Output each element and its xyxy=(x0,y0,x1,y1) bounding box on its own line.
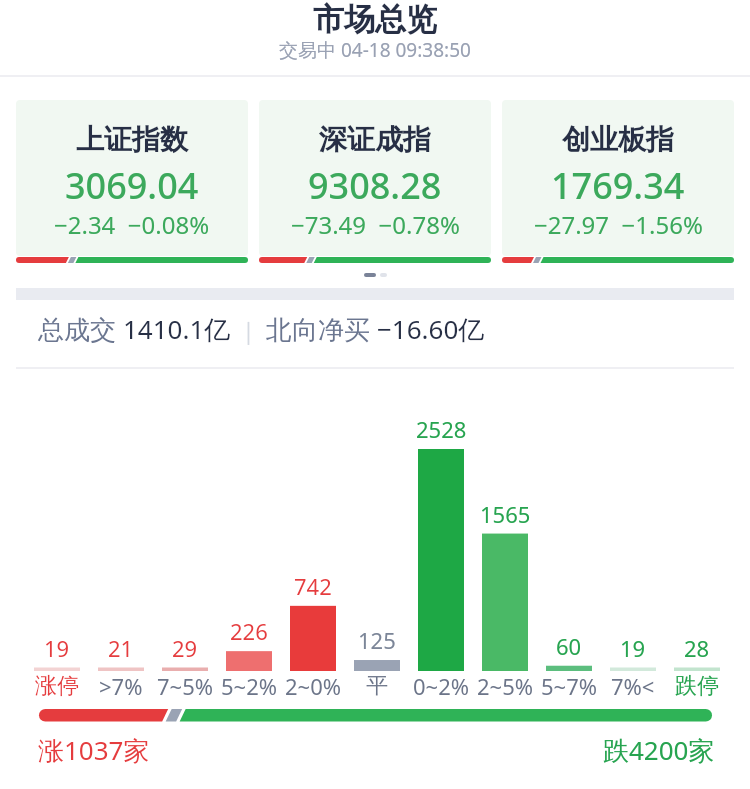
staticText: 平 xyxy=(366,672,388,700)
staticText: −73.49 −0.78% xyxy=(291,208,460,241)
staticText: 742 xyxy=(294,571,332,601)
staticText: 创业板指 xyxy=(562,122,674,157)
staticText: 7~5% xyxy=(157,671,214,701)
staticText: 9308.28 xyxy=(308,161,442,206)
staticText: 2528 xyxy=(416,414,467,444)
staticText: 125 xyxy=(358,625,396,655)
staticText: 60 xyxy=(556,631,582,661)
staticText: 2~5% xyxy=(477,671,534,701)
button[interactable]: 总成交 xyxy=(38,309,485,349)
staticText: 市场总览 xyxy=(313,0,437,38)
button[interactable]: 创业板指 xyxy=(502,100,734,263)
staticText: 北向净买 xyxy=(266,311,377,347)
staticText: 跌停 xyxy=(675,672,719,700)
staticText: >7% xyxy=(99,671,143,701)
staticText: 上证指数 xyxy=(76,122,188,157)
staticText: 21 xyxy=(108,633,134,663)
staticText: 7%< xyxy=(611,671,655,701)
staticText: 19 xyxy=(44,633,70,663)
staticText: 跌4200家 xyxy=(603,732,715,766)
staticText: 19 xyxy=(620,633,646,663)
staticText: 1410.1亿 xyxy=(123,311,231,347)
staticText: 0~2% xyxy=(413,671,470,701)
staticText: 深证成指 xyxy=(319,122,431,157)
staticText: 总成交 xyxy=(38,311,123,347)
staticText: 交易中 04-18 09:38:50 xyxy=(279,37,471,63)
staticText: 涨1037家 xyxy=(38,732,150,766)
staticText: 28 xyxy=(684,633,710,663)
staticText: 1769.34 xyxy=(551,161,685,206)
staticText: 涨停 xyxy=(35,672,79,700)
staticText: −27.97 −1.56% xyxy=(534,208,703,241)
staticText: ｜ xyxy=(231,314,266,345)
staticText: −16.60亿 xyxy=(377,311,485,347)
staticText: 3069.04 xyxy=(65,161,199,206)
staticText: 1565 xyxy=(480,499,531,529)
staticText: 29 xyxy=(172,633,198,663)
staticText: 5~2% xyxy=(221,671,278,701)
staticText: 2~0% xyxy=(285,671,342,701)
staticText: 5~7% xyxy=(541,671,598,701)
staticText: −2.34 −0.08% xyxy=(54,208,210,241)
staticText: 226 xyxy=(230,616,268,646)
button[interactable]: 上证指数 xyxy=(16,100,248,263)
button[interactable]: 深证成指 xyxy=(259,100,491,263)
